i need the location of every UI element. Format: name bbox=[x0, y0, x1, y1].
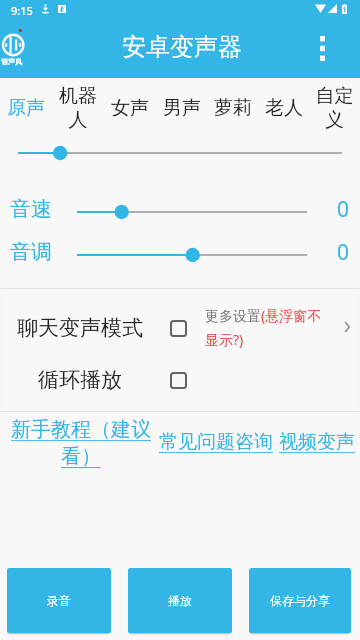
button[interactable]: 音速 slider bbox=[77, 200, 307, 224]
button[interactable]: 录音 bbox=[7, 568, 111, 633]
button[interactable]: 音调 slider bbox=[77, 243, 307, 267]
staticText: 循环播放 bbox=[38, 367, 122, 393]
button[interactable]: 循环播放 bbox=[0, 354, 198, 406]
button[interactable]: App logo bbox=[0, 28, 28, 68]
staticText: 女声 bbox=[111, 96, 149, 120]
staticText: 原声 bbox=[7, 96, 45, 120]
staticText: 视频变声 bbox=[279, 430, 355, 454]
button[interactable]: 原声 bbox=[0, 78, 52, 138]
staticText: 老人 bbox=[265, 96, 303, 120]
button[interactable]: 萝莉 bbox=[207, 78, 258, 138]
button[interactable]: 新手教程（建议看） bbox=[7, 417, 155, 469]
button[interactable]: Checkbox bbox=[160, 362, 196, 398]
staticText: 0 bbox=[337, 195, 350, 219]
staticText: 聊天变声模式 bbox=[17, 315, 143, 341]
button[interactable]: Checkbox bbox=[160, 310, 196, 346]
button[interactable]: More options bbox=[300, 26, 344, 70]
button[interactable]: 视频变声 bbox=[279, 430, 355, 454]
staticText: 0 bbox=[337, 238, 350, 262]
staticText: 自定义 bbox=[309, 84, 360, 132]
button[interactable]: 机器人 bbox=[52, 78, 104, 138]
button[interactable]: 自定义 bbox=[309, 78, 360, 138]
staticText: 语声风 bbox=[1, 57, 22, 66]
button[interactable]: 女声 bbox=[104, 78, 156, 138]
button[interactable]: 更多设置(悬浮窗不显示?) bbox=[198, 300, 358, 350]
staticText: 音调 bbox=[10, 239, 52, 263]
staticText: 9:15 bbox=[11, 3, 33, 18]
button[interactable]: 男声 bbox=[156, 78, 207, 138]
button[interactable]: 保存与分享 bbox=[249, 568, 351, 633]
button[interactable]: Voice level slider bbox=[0, 140, 360, 166]
staticText: 萝莉 bbox=[214, 96, 252, 120]
button[interactable]: 聊天变声模式 bbox=[0, 302, 198, 354]
button[interactable]: 老人 bbox=[258, 78, 309, 138]
staticText: 新手教程（建议看） bbox=[7, 417, 155, 469]
staticText: 保存与分享 bbox=[270, 593, 330, 608]
button[interactable]: 常见问题咨询 bbox=[159, 430, 273, 454]
staticText: 录音 bbox=[47, 593, 71, 608]
staticText: 常见问题咨询 bbox=[159, 430, 273, 454]
staticText: 机器人 bbox=[52, 84, 104, 132]
staticText: 音速 bbox=[10, 196, 52, 220]
button[interactable]: 播放 bbox=[128, 568, 232, 633]
staticText: 更多设置(悬浮窗不显示?) bbox=[205, 306, 331, 349]
staticText: 安卓变声器 bbox=[122, 32, 242, 62]
staticText: 男声 bbox=[163, 96, 201, 120]
staticText: 播放 bbox=[168, 593, 192, 608]
